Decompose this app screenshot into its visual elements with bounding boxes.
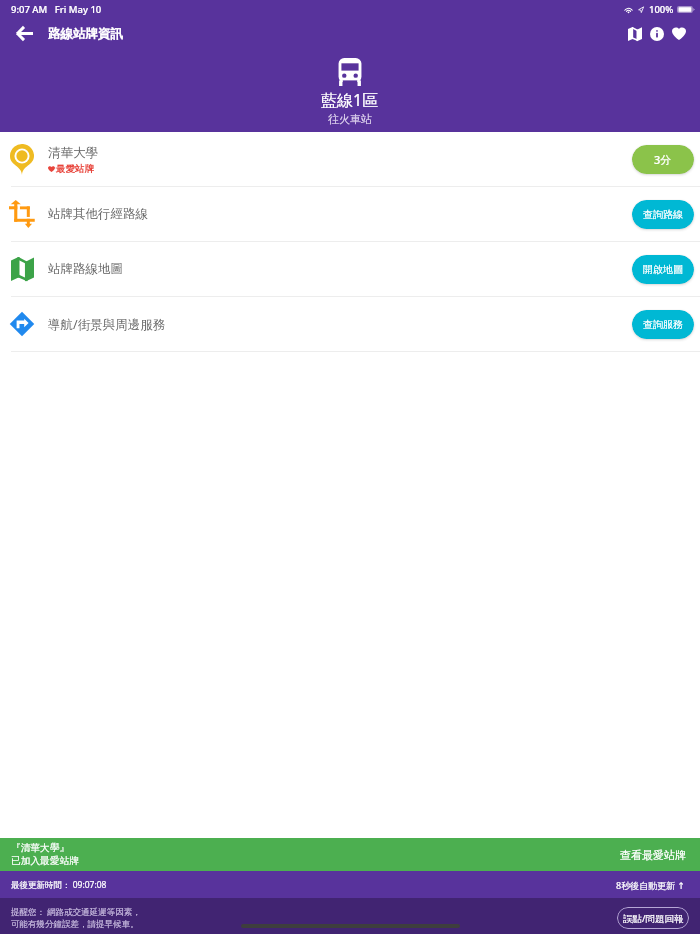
staticText: 最愛站牌 [56,163,94,175]
button[interactable]: 開啟地圖 [632,255,694,284]
staticText: 『清華大學』 [11,842,70,854]
staticText: 藍線1區 [321,89,379,111]
button[interactable]: 查詢服務 [632,310,694,339]
button[interactable]: 站牌路線地圖 [0,242,700,296]
staticText: 查詢路線 [643,208,683,221]
staticText: 導航/街景與周邊服務 [48,316,632,333]
staticText: 誤點/問題回報 [623,912,684,925]
staticText: 8秒後自動更新 ↑ [616,879,686,891]
staticText: 查看最愛站牌 [620,848,686,862]
button[interactable]: Favourite [668,18,689,49]
staticText: 站牌路線地圖 [48,261,632,277]
button[interactable]: 『清華大學』 [0,838,700,871]
button[interactable]: Info [646,18,668,49]
button[interactable]: 3分 [632,145,694,174]
staticText: 3分 [654,152,672,167]
staticText: 100% [649,3,674,16]
staticText: 已加入最愛站牌 [11,855,79,867]
button[interactable]: Map [624,18,646,49]
staticText: 站牌其他行經路線 [48,206,632,222]
button[interactable]: 清華大學 [0,132,700,186]
button[interactable]: 誤點/問題回報 [617,907,689,929]
staticText: 最後更新時間： 09:07:08 [11,879,107,891]
staticText: 9:07 AM Fri May 10 [11,3,102,16]
button[interactable]: 8秒後自動更新 ↑ [616,879,686,891]
button[interactable]: Back [0,18,48,49]
button[interactable]: 站牌其他行經路線 [0,187,700,241]
staticText: 查詢服務 [643,318,683,331]
button[interactable]: 查詢路線 [632,200,694,229]
staticText: 清華大學 [48,145,98,161]
staticText: 開啟地圖 [643,263,683,276]
staticText: 可能有幾分鐘誤差，請提早候車。 [11,919,139,930]
button[interactable]: 導航/街景與周邊服務 [0,297,700,351]
staticText: 路線站牌資訊 [48,26,123,42]
staticText: 往火車站 [328,112,372,126]
staticText: 提醒您： 網路或交通延遲等因素， [11,906,141,918]
